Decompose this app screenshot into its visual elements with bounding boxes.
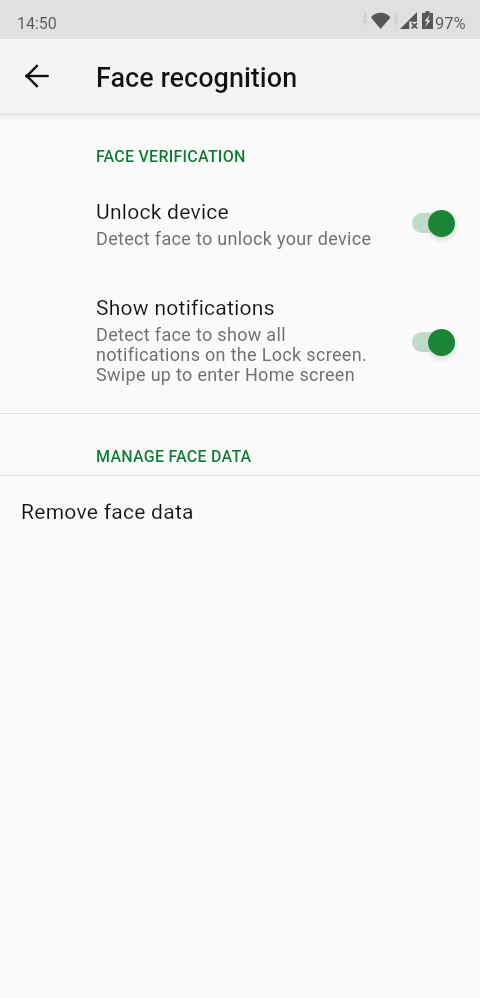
staticText: FACE VERIFICATION [96, 147, 246, 166]
staticText: Detect face to show all notifications on… [96, 324, 367, 385]
staticText: Face recognition [96, 62, 298, 94]
button[interactable]: Unlock device [0, 184, 480, 258]
staticText: Detect face to unlock your device [96, 228, 372, 249]
button[interactable]: Remove face data [0, 476, 480, 536]
staticText: Show notifications [96, 296, 275, 321]
button[interactable]: Show notifications, on [408, 326, 458, 358]
staticText: Remove face data [21, 500, 194, 525]
button[interactable]: Unlock device, on [408, 207, 458, 239]
staticText: Unlock device [96, 200, 230, 225]
staticText: 97% [435, 14, 466, 33]
staticText: MANAGE FACE DATA [96, 447, 252, 466]
staticText: 14:50 [17, 14, 57, 33]
button[interactable]: Show notifications [0, 280, 480, 398]
button[interactable]: Navigate up [9, 48, 65, 104]
